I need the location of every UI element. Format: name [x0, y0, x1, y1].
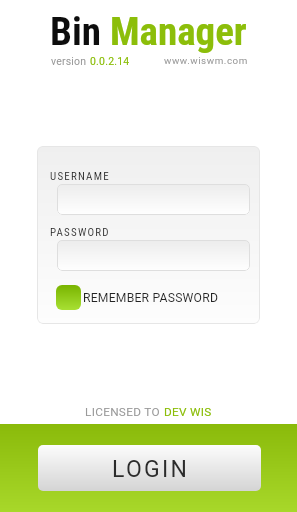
staticText: www.wiswm.com [164, 55, 248, 66]
staticText: DEV WIS [164, 405, 212, 419]
button[interactable] [57, 240, 250, 271]
staticText: REMEMBER PASSWORD [83, 291, 219, 305]
staticText: 0.0.2.14 [90, 55, 130, 67]
button[interactable] [57, 184, 250, 215]
staticText: LOGIN [112, 456, 190, 483]
button[interactable]: REMEMBER PASSWORD [56, 285, 219, 310]
staticText: PASSWORD [50, 226, 110, 239]
staticText: USERNAME [50, 170, 110, 183]
staticText: Manager [110, 9, 247, 55]
staticText: Bin [50, 9, 110, 55]
button[interactable]: LOGIN [38, 445, 261, 491]
staticText: LICENSED TO [85, 405, 164, 419]
staticText: version [51, 55, 90, 67]
